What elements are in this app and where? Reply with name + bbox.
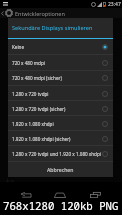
staticText: 720 x 480 mdpi: [12, 60, 45, 66]
button[interactable]: Abbrechen: [47, 166, 74, 173]
staticText: 1.280 x 720 tvdpi (sicher): [12, 106, 66, 112]
staticText: Entwickleroptionen: [15, 10, 65, 17]
button[interactable]: 1.920 x 1.080 xhdpi: [8, 116, 113, 131]
staticText: 768x1280 120kb PNG: [3, 199, 119, 214]
button[interactable]: Navigate up: [0, 8, 15, 18]
button[interactable]: Keine: [8, 39, 113, 55]
staticText: Aus: [6, 178, 14, 184]
button[interactable]: 1.280 x 720 tvdpi (sicher): [8, 101, 113, 116]
button[interactable]: 1.920 x 1.080 xhdpi (sicher): [8, 131, 113, 146]
staticText: 720 x 480 mdpi (sicher): [12, 75, 62, 81]
button[interactable]: Recent apps: [89, 190, 101, 199]
button[interactable]: 1.280 x 720 tvdpi: [8, 86, 113, 101]
button[interactable]: Home: [54, 190, 66, 199]
staticText: Keine: [12, 44, 25, 50]
staticText: 23:47: [108, 1, 121, 8]
staticText: 1.280 x 720 tvdpi: [12, 91, 49, 97]
button[interactable]: 1.280 x 720 tvdpi und 1.920 x 1.080 xhdp…: [8, 145, 113, 162]
button[interactable]: Back: [20, 190, 32, 199]
button[interactable]: 720 x 480 mdpi (sicher): [8, 70, 113, 86]
staticText: 1.920 x 1.080 xhdpi: [12, 121, 54, 127]
button[interactable]: 720 x 480 mdpi: [8, 55, 113, 71]
staticText: 1.920 x 1.080 xhdpi (sicher): [12, 136, 71, 142]
staticText: Abbrechen: [47, 166, 74, 173]
staticText: 1.280 x 720 tvdpi und 1.920 x 1.080 xhdp…: [12, 151, 101, 157]
staticText: Sekundäre Displays simulieren: [12, 24, 93, 32]
